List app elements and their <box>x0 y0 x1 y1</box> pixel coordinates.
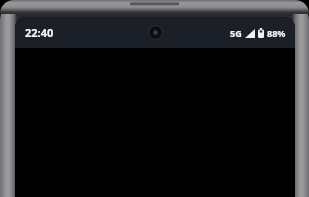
other: Signal strength <box>245 29 255 38</box>
other: Battery 88 percent <box>258 28 264 38</box>
staticText: 5G <box>230 27 242 39</box>
staticText: 22:40 <box>25 25 54 40</box>
button[interactable]: 5G <box>230 27 286 39</box>
button[interactable]: 22:40 <box>25 25 54 40</box>
other: Front camera <box>148 25 163 40</box>
staticText: 88% <box>267 27 286 39</box>
